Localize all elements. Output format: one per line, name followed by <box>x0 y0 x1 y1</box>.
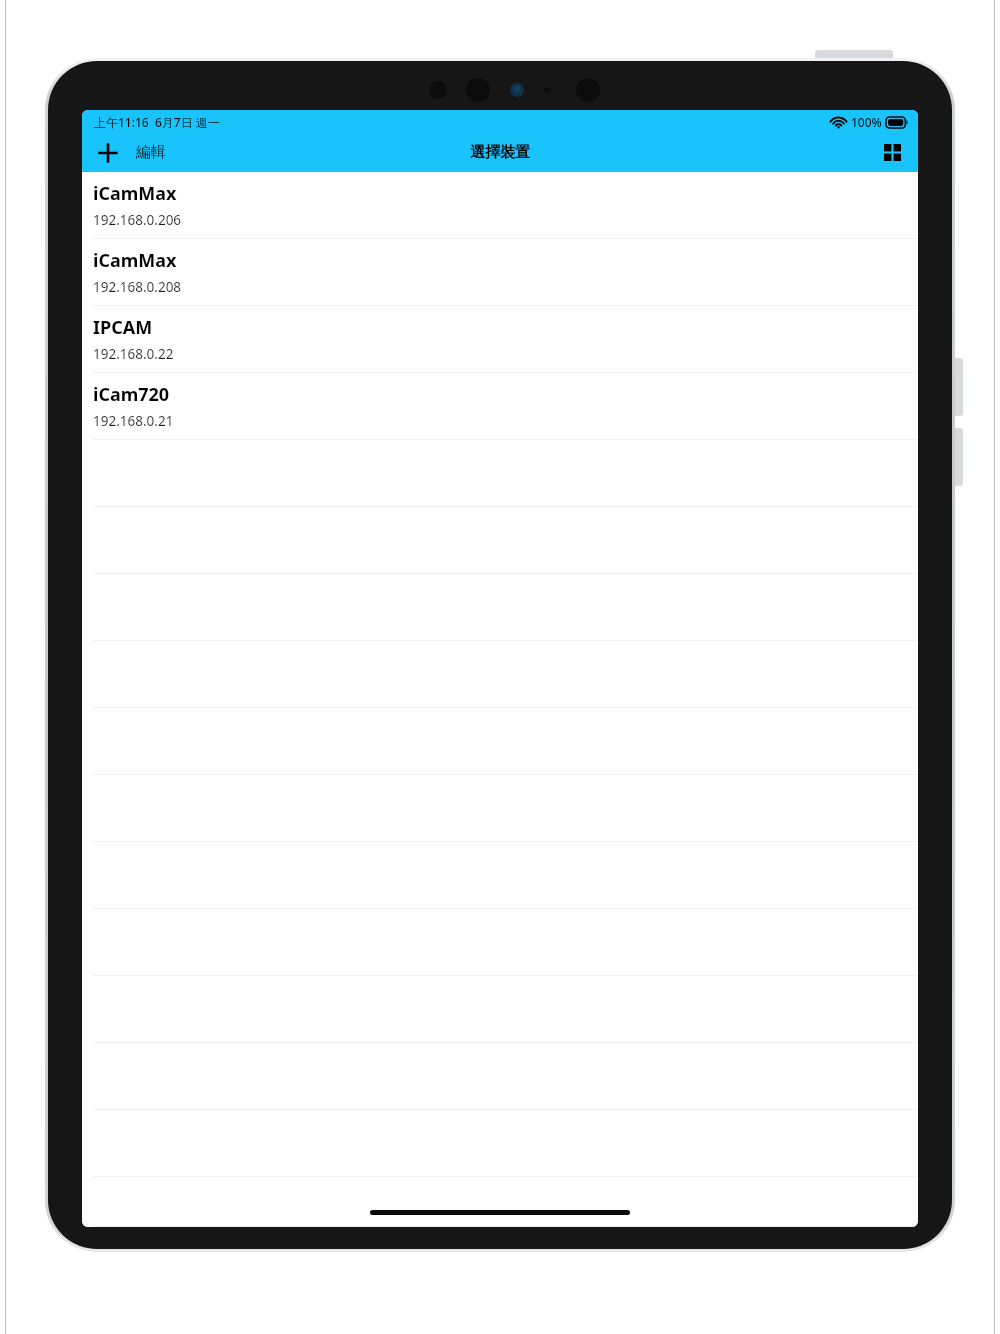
button[interactable]: 編輯 <box>130 133 172 172</box>
staticText: IPCAM <box>93 315 153 340</box>
staticText: 100% <box>851 114 882 130</box>
staticText: 編輯 <box>136 143 166 162</box>
staticText: 選擇裝置 <box>470 143 530 162</box>
staticText: 192.168.0.22 <box>93 345 174 363</box>
staticText: 192.168.0.206 <box>93 211 182 229</box>
staticText: iCamMax <box>93 181 177 206</box>
button[interactable]: IPCAM <box>82 306 918 373</box>
staticText: 192.168.0.208 <box>93 278 182 296</box>
staticText: iCam720 <box>93 382 170 407</box>
button[interactable]: iCamMax <box>82 239 918 306</box>
staticText: 192.168.0.21 <box>93 412 174 430</box>
button[interactable]: iCamMax <box>82 172 918 239</box>
staticText: iCamMax <box>93 248 177 273</box>
button[interactable]: iCam720 <box>82 373 918 440</box>
staticText: 上午11:16 6月7日 週一 <box>94 114 220 130</box>
button[interactable]: Grid view <box>872 133 912 172</box>
button[interactable]: Add device <box>86 133 130 172</box>
